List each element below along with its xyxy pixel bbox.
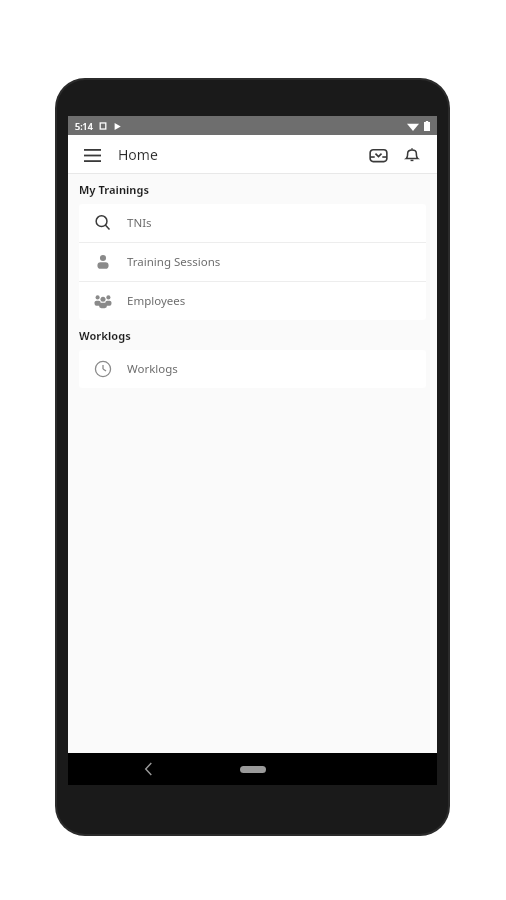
button[interactable]: Employees [79,282,426,320]
button[interactable]: Notifications [397,140,427,170]
button[interactable]: Open navigation menu [78,141,106,169]
button[interactable]: Back [136,757,160,781]
staticText: My Trainings [79,182,149,197]
button[interactable]: Inbox [363,140,393,170]
button[interactable]: Home [233,758,273,780]
staticText: Worklogs [79,328,131,343]
staticText: Training Sessions [127,254,221,270]
staticText: TNIs [127,215,152,231]
staticText: Home [118,145,158,164]
button[interactable]: Training Sessions [79,243,426,281]
staticText: 5:14 [75,120,93,132]
button[interactable]: Worklogs [79,350,426,388]
staticText: Worklogs [127,361,178,377]
staticText: Employees [127,293,186,309]
button[interactable]: TNIs [79,204,426,242]
